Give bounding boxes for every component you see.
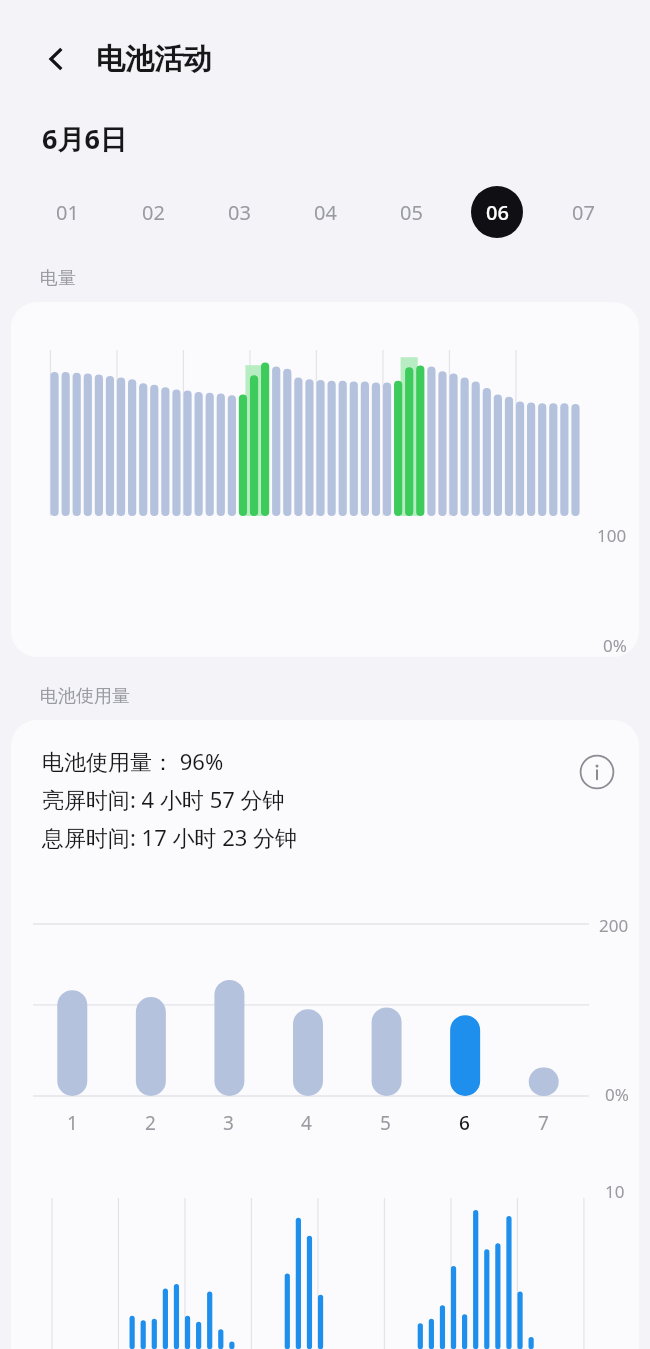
- staticText: 2: [145, 1110, 156, 1136]
- button[interactable]: 06: [454, 179, 540, 245]
- button[interactable]: 01: [24, 179, 110, 245]
- button[interactable]: 100: [11, 302, 639, 657]
- button[interactable]: 07: [540, 179, 626, 245]
- staticText: 200: [599, 914, 629, 937]
- staticText: 07: [572, 199, 595, 226]
- staticText: 亮屏时间: 4 小时 57 分钟: [42, 784, 285, 814]
- staticText: 6: [459, 1110, 470, 1136]
- button[interactable]: 02: [110, 179, 196, 245]
- staticText: 03: [228, 199, 251, 226]
- button[interactable]: 05: [368, 179, 454, 245]
- button[interactable]: Back: [30, 33, 82, 85]
- staticText: 5: [380, 1110, 391, 1136]
- staticText: 7: [538, 1110, 549, 1136]
- button[interactable]: 04: [282, 179, 368, 245]
- button[interactable]: Info: [573, 748, 621, 796]
- staticText: 电池使用量: [40, 685, 130, 708]
- staticText: 0%: [605, 1083, 629, 1106]
- staticText: 电量: [40, 267, 76, 290]
- staticText: 电池使用量： 96%: [42, 746, 224, 776]
- staticText: 电池活动: [96, 41, 212, 78]
- staticText: 1: [67, 1110, 78, 1136]
- staticText: 6月6日: [42, 120, 127, 157]
- button[interactable]: 03: [196, 179, 282, 245]
- staticText: 4: [301, 1110, 312, 1136]
- staticText: 100: [597, 524, 627, 547]
- staticText: 05: [400, 199, 423, 226]
- staticText: 02: [142, 199, 165, 226]
- staticText: 04: [314, 199, 337, 226]
- staticText: 3: [223, 1110, 234, 1136]
- staticText: 01: [56, 199, 79, 226]
- staticText: 06: [486, 199, 509, 226]
- staticText: 0%: [603, 634, 627, 657]
- staticText: 息屏时间: 17 小时 23 分钟: [42, 822, 298, 852]
- staticText: 10: [605, 1180, 625, 1203]
